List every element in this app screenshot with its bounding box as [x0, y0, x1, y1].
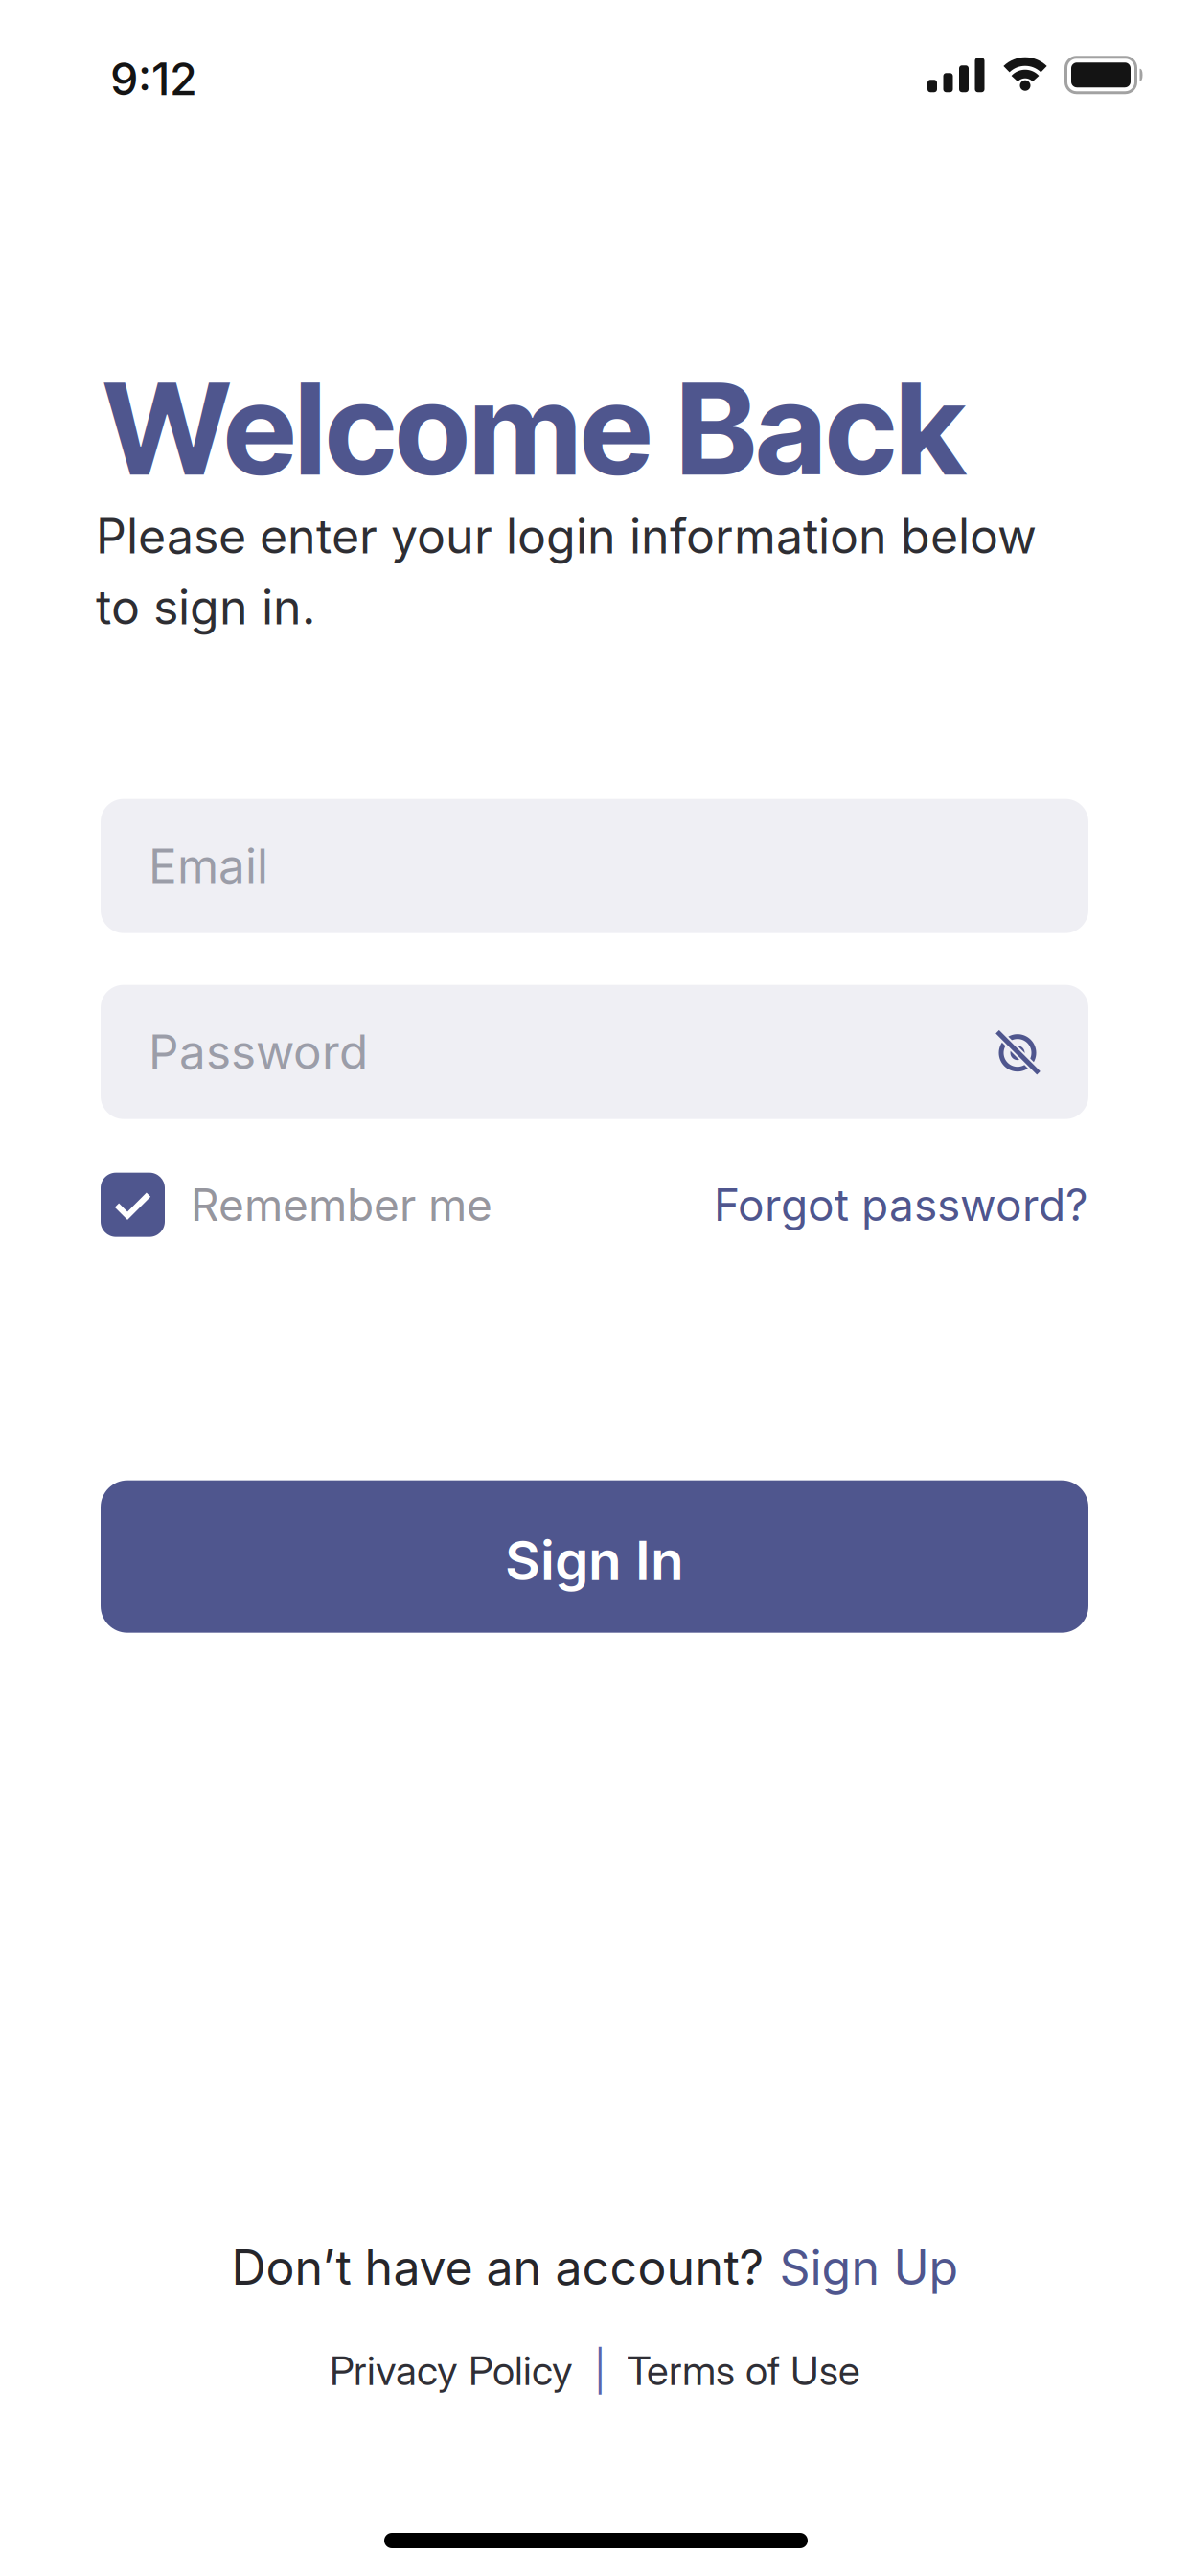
- staticText: Sign Up: [779, 2238, 959, 2296]
- button[interactable]: Show password: [995, 1027, 1041, 1077]
- staticText: Privacy Policy: [330, 2346, 573, 2395]
- staticText: Please enter your login information belo…: [96, 507, 1037, 636]
- button[interactable]: Sign Up: [779, 2238, 959, 2296]
- staticText: Sign In: [505, 1527, 684, 1593]
- staticText: 9:12: [110, 52, 197, 106]
- button[interactable]: Privacy Policy: [330, 2346, 573, 2395]
- button[interactable]: Password: [101, 985, 1088, 1119]
- button[interactable]: Remember me: [101, 1173, 492, 1237]
- staticText: Terms of Use: [627, 2346, 860, 2395]
- button[interactable]: Forgot password?: [714, 1178, 1088, 1231]
- button[interactable]: Terms of Use: [627, 2346, 860, 2395]
- staticText: Welcome Back: [103, 352, 965, 505]
- button[interactable]: Sign In: [101, 1480, 1088, 1633]
- staticText: |: [594, 2346, 606, 2395]
- staticText: Email: [149, 837, 268, 895]
- button[interactable]: Email: [101, 799, 1088, 933]
- staticText: Don’t have an account?: [231, 2238, 764, 2296]
- staticText: Remember me: [191, 1178, 492, 1231]
- staticText: Password: [149, 1023, 368, 1081]
- staticText: Forgot password?: [714, 1178, 1088, 1231]
